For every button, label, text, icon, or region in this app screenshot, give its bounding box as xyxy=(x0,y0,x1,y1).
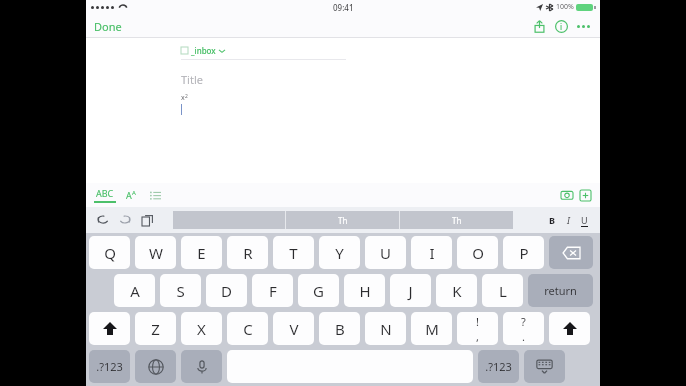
button[interactable]: Th xyxy=(286,211,399,229)
button[interactable]: ABC xyxy=(94,187,116,203)
staticText: R xyxy=(243,243,253,263)
staticText: ? xyxy=(521,314,526,329)
staticText: B xyxy=(335,319,345,339)
staticText: K xyxy=(452,281,462,301)
staticText: 2 xyxy=(185,93,188,100)
staticText: ! xyxy=(476,314,479,329)
staticText: M xyxy=(425,319,439,339)
staticText: 09:41 xyxy=(333,2,354,13)
button[interactable]: Text format xyxy=(126,189,136,201)
staticText: G xyxy=(313,281,324,301)
button[interactable]: Z xyxy=(135,312,176,345)
button[interactable]: More xyxy=(572,15,594,37)
button[interactable]: _inbox xyxy=(181,45,225,56)
button[interactable]: F xyxy=(252,274,293,307)
button[interactable]: Add xyxy=(576,186,594,204)
staticText: ABC xyxy=(96,187,114,199)
staticText: _inbox xyxy=(191,45,216,56)
button[interactable]: G xyxy=(298,274,339,307)
button[interactable]: U xyxy=(576,212,592,228)
button[interactable]: C xyxy=(227,312,268,345)
button[interactable]: S xyxy=(160,274,201,307)
button[interactable]: O xyxy=(457,236,498,269)
button[interactable]: K xyxy=(436,274,477,307)
staticText: Th xyxy=(338,215,348,226)
staticText: .?123 xyxy=(96,359,123,374)
staticText: U xyxy=(380,243,391,263)
button[interactable]: ? xyxy=(503,312,544,345)
button[interactable]: M xyxy=(411,312,452,345)
button[interactable]: Q xyxy=(89,236,130,269)
staticText: Title xyxy=(181,72,203,87)
button[interactable]: Change language xyxy=(135,350,176,383)
button[interactable]: J xyxy=(390,274,431,307)
staticText: I xyxy=(429,243,435,263)
button[interactable]: L xyxy=(482,274,523,307)
staticText: Q xyxy=(104,243,116,263)
button[interactable]: return xyxy=(528,274,593,307)
staticText: Z xyxy=(151,319,160,339)
button[interactable]: D xyxy=(206,274,247,307)
button[interactable]: .?123 xyxy=(478,350,519,383)
button[interactable]: Hide keyboard xyxy=(524,350,565,383)
button[interactable]: Info xyxy=(550,15,572,37)
button[interactable]: Shift xyxy=(549,312,590,345)
button[interactable]: X xyxy=(181,312,222,345)
staticText: T xyxy=(289,243,298,263)
button[interactable]: I xyxy=(411,236,452,269)
staticText: X xyxy=(197,319,206,339)
staticText: Done xyxy=(94,19,122,34)
staticText: U xyxy=(581,214,588,226)
staticText: . xyxy=(522,329,525,344)
staticText: , xyxy=(476,329,479,344)
button[interactable]: Dictate xyxy=(181,350,222,383)
staticText: A xyxy=(126,189,132,201)
button[interactable]: V xyxy=(273,312,314,345)
staticText: 100% xyxy=(556,2,574,12)
staticText: P xyxy=(519,243,529,263)
staticText: i xyxy=(560,21,563,32)
staticText: A xyxy=(130,281,140,301)
staticText: O xyxy=(472,243,484,263)
button[interactable]: Y xyxy=(319,236,360,269)
button[interactable]: U xyxy=(365,236,406,269)
button[interactable]: Done xyxy=(94,19,122,34)
button[interactable]: E xyxy=(181,236,222,269)
button[interactable]: B xyxy=(544,212,560,228)
button[interactable]: ! xyxy=(457,312,498,345)
staticText: return xyxy=(544,283,577,298)
button[interactable]: Camera xyxy=(558,186,576,204)
button[interactable]: I xyxy=(560,212,576,228)
button[interactable]: H xyxy=(344,274,385,307)
button[interactable]: List xyxy=(148,188,162,202)
button[interactable]: Th xyxy=(400,211,513,229)
button[interactable]: T xyxy=(273,236,314,269)
staticText: Th xyxy=(452,215,462,226)
staticText: W xyxy=(149,243,163,263)
button[interactable]: Backspace xyxy=(549,236,593,269)
button[interactable]: A xyxy=(114,274,155,307)
staticText: E xyxy=(197,243,206,263)
button[interactable]: R xyxy=(227,236,268,269)
button[interactable]: Undo xyxy=(94,211,112,229)
staticText: I xyxy=(567,214,570,226)
button[interactable]: N xyxy=(365,312,406,345)
button[interactable]: Paste xyxy=(138,211,156,229)
button[interactable]: P xyxy=(503,236,544,269)
button[interactable]: B xyxy=(319,312,360,345)
staticText: D xyxy=(221,281,232,301)
button[interactable]: Redo xyxy=(116,211,134,229)
button[interactable]: Share xyxy=(528,15,550,37)
staticText: Y xyxy=(335,243,344,263)
staticText: F xyxy=(269,281,277,301)
button[interactable]: .?123 xyxy=(89,350,130,383)
staticText: H xyxy=(359,281,371,301)
button[interactable]: W xyxy=(135,236,176,269)
staticText: N xyxy=(380,319,392,339)
staticText: x xyxy=(181,93,185,103)
button[interactable]: Shift xyxy=(89,312,130,345)
staticText: A xyxy=(132,189,136,197)
staticText: S xyxy=(176,281,185,301)
